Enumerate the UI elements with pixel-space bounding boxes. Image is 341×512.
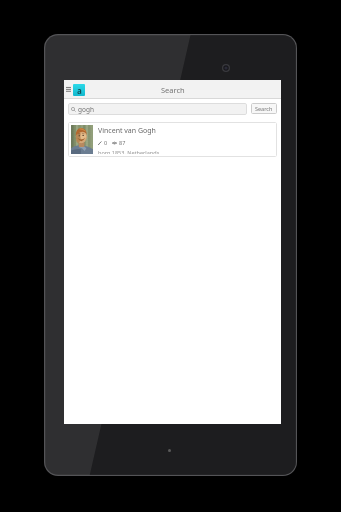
button[interactable]: gogh [68, 103, 247, 115]
staticText: gogh [78, 105, 94, 114]
button[interactable]: App home [73, 84, 85, 96]
button[interactable]: Open navigation menu [64, 80, 73, 99]
button[interactable]: Vincent van Gogh [68, 122, 277, 157]
staticText: a [77, 85, 82, 96]
staticText: Search [161, 85, 185, 95]
staticText: born 1853, Netherlands [98, 149, 160, 154]
staticText: Vincent van Gogh [98, 126, 156, 136]
staticText: Search [255, 105, 273, 112]
button[interactable]: Search [251, 103, 277, 114]
staticText: 87 [119, 139, 126, 146]
staticText: 0 [104, 139, 108, 146]
